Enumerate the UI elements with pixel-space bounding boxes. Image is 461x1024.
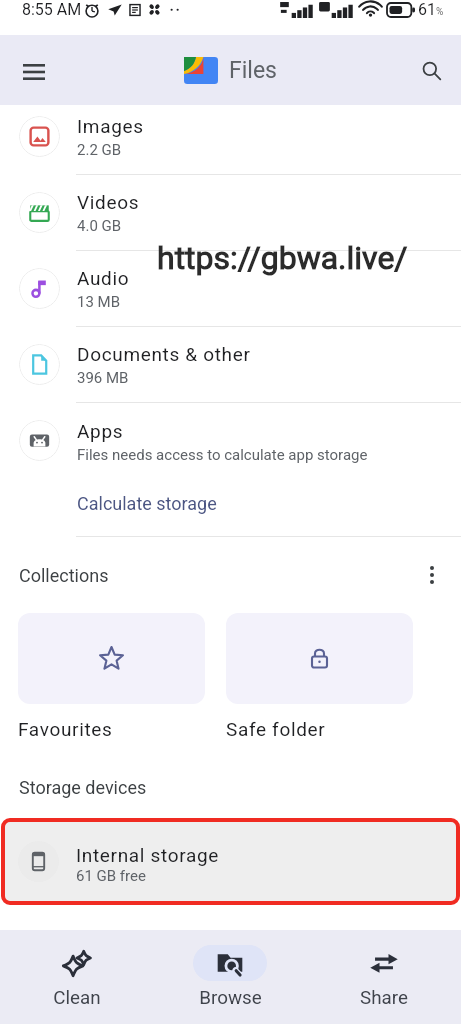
button[interactable]: Apps	[0, 403, 461, 464]
button[interactable]: Clean	[0, 930, 153, 1024]
button[interactable]: Menu	[13, 49, 55, 91]
staticText: 396 MB	[77, 369, 129, 387]
button[interactable]: Images	[0, 105, 461, 174]
staticText: 13 MB	[77, 293, 121, 311]
button[interactable]: Share	[307, 930, 461, 1024]
staticText: Videos	[77, 191, 140, 213]
button[interactable]: Videos	[0, 175, 461, 250]
staticText: Safe folder	[226, 718, 326, 740]
button[interactable]: Search	[410, 49, 452, 91]
staticText: Audio	[77, 267, 130, 289]
button[interactable]: Calculate storage	[71, 489, 223, 518]
staticText: Internal storage	[76, 844, 220, 866]
staticText: %	[436, 6, 444, 18]
staticText: Storage devices	[19, 777, 147, 798]
staticText: 2.2 GB	[77, 141, 122, 159]
button[interactable]	[226, 613, 413, 704]
button[interactable]: Browse	[153, 930, 307, 1024]
button[interactable]: Internal storage	[5, 822, 456, 901]
button[interactable]: Documents & other	[0, 327, 461, 402]
staticText: Documents & other	[77, 343, 251, 365]
button[interactable]: More options	[415, 558, 449, 592]
staticText: Collections	[19, 565, 109, 586]
staticText: Clean	[53, 987, 101, 1009]
staticText: Favourites	[18, 718, 113, 740]
button[interactable]	[18, 613, 205, 704]
staticText: 4.0 GB	[77, 217, 122, 235]
staticText: https://gbwa.live/	[157, 239, 408, 277]
staticText: Apps	[77, 420, 124, 442]
staticText: 61 GB free	[76, 867, 146, 885]
staticText: Share	[360, 987, 408, 1009]
button[interactable]: Audio	[0, 251, 461, 326]
staticText: Images	[77, 115, 144, 137]
staticText: 61	[418, 0, 436, 19]
staticText: Browse	[199, 987, 262, 1009]
staticText: Files needs access to calculate app stor…	[77, 446, 368, 464]
staticText: 8:55 AM	[22, 0, 82, 19]
staticText: Calculate storage	[77, 493, 217, 514]
staticText: Files	[229, 57, 277, 84]
